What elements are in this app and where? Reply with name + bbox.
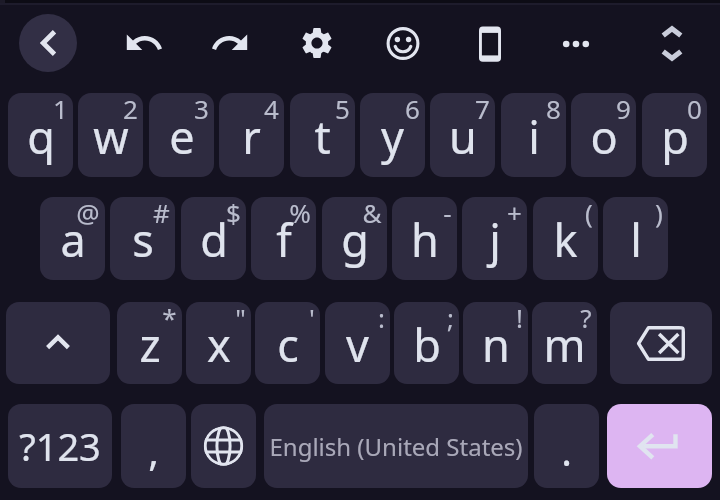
staticText: ?123 — [19, 420, 101, 472]
button[interactable]: , — [121, 404, 186, 488]
button[interactable]: Backspace — [610, 302, 712, 384]
staticText: b — [413, 314, 441, 375]
staticText: @ — [76, 197, 100, 230]
staticText: k — [553, 209, 578, 270]
staticText: x — [207, 314, 231, 375]
staticText: , — [148, 423, 159, 477]
staticText: 6 — [405, 93, 420, 126]
staticText: y — [381, 106, 404, 167]
button[interactable]: Settings — [289, 15, 345, 71]
staticText: c — [277, 314, 299, 375]
button[interactable]: Change language — [191, 404, 256, 488]
staticText: # — [153, 197, 170, 230]
staticText: l — [630, 209, 642, 270]
button[interactable]: Undo — [116, 15, 172, 71]
staticText: 8 — [546, 93, 561, 126]
button[interactable]: a — [40, 197, 105, 280]
staticText: s — [132, 209, 154, 270]
button[interactable]: e — [149, 93, 214, 177]
button[interactable]: Switch keyboard layout — [462, 15, 518, 71]
staticText: $ — [226, 197, 241, 230]
staticText: p — [661, 106, 689, 167]
staticText: d — [200, 209, 228, 270]
button[interactable]: l — [603, 197, 668, 280]
button[interactable]: b — [394, 302, 459, 384]
button[interactable]: q — [8, 93, 73, 177]
staticText: : — [378, 302, 385, 335]
staticText: q — [27, 106, 55, 167]
button[interactable]: c — [255, 302, 320, 384]
staticText: h — [411, 209, 439, 270]
button[interactable]: Resize keyboard — [644, 15, 700, 71]
button[interactable]: r — [219, 93, 284, 177]
staticText: j — [489, 209, 501, 270]
button[interactable]: Emoji — [375, 15, 431, 71]
staticText: e — [169, 106, 195, 167]
button[interactable]: z — [117, 302, 182, 384]
button[interactable]: g — [322, 197, 387, 280]
button[interactable]: ?123 — [8, 404, 112, 488]
button[interactable]: u — [430, 93, 495, 177]
staticText: g — [341, 209, 369, 270]
staticText: ? — [580, 302, 592, 335]
button[interactable]: n — [463, 302, 528, 384]
button[interactable]: f — [251, 197, 316, 280]
staticText: v — [346, 314, 369, 375]
staticText: . — [561, 423, 572, 477]
button[interactable]: . — [534, 404, 599, 488]
staticText: t — [314, 106, 331, 167]
button[interactable]: h — [392, 197, 457, 280]
staticText: " — [235, 302, 246, 335]
button[interactable]: i — [501, 93, 566, 177]
button[interactable]: p — [642, 93, 707, 177]
staticText: i — [528, 106, 540, 167]
staticText: 3 — [194, 93, 209, 126]
button[interactable]: x — [186, 302, 251, 384]
button[interactable]: v — [325, 302, 390, 384]
staticText: 0 — [687, 93, 702, 126]
staticText: a — [60, 209, 86, 270]
staticText: 4 — [264, 93, 279, 126]
button[interactable]: w — [78, 93, 143, 177]
staticText: - — [443, 197, 452, 230]
staticText: m — [543, 314, 586, 375]
staticText: 7 — [475, 93, 490, 126]
staticText: o — [590, 106, 618, 167]
button[interactable]: s — [110, 197, 175, 280]
staticText: ; — [447, 302, 454, 335]
staticText: w — [93, 106, 129, 167]
staticText: % — [289, 197, 311, 230]
button[interactable]: o — [571, 93, 636, 177]
button[interactable]: Shift — [6, 302, 110, 384]
staticText: ! — [516, 302, 523, 335]
staticText: r — [242, 106, 261, 167]
button[interactable]: English (United States) — [264, 404, 528, 488]
staticText: z — [139, 314, 161, 375]
staticText: English (United States) — [269, 430, 523, 463]
staticText: ' — [309, 302, 315, 335]
staticText: 2 — [123, 93, 138, 126]
staticText: n — [482, 314, 510, 375]
button[interactable]: k — [533, 197, 598, 280]
button[interactable]: Redo — [202, 15, 258, 71]
staticText: 1 — [53, 93, 68, 126]
button[interactable]: Enter — [607, 404, 712, 488]
button[interactable]: More options — [548, 15, 604, 71]
button[interactable]: m — [532, 302, 597, 384]
button[interactable]: j — [462, 197, 527, 280]
button[interactable]: y — [360, 93, 425, 177]
button[interactable]: t — [290, 93, 355, 177]
staticText: 5 — [335, 93, 350, 126]
button[interactable]: Back — [19, 14, 77, 72]
staticText: * — [162, 302, 177, 335]
staticText: u — [449, 106, 477, 167]
staticText: ( — [585, 197, 593, 230]
button[interactable]: d — [181, 197, 246, 280]
staticText: + — [507, 197, 522, 230]
staticText: f — [276, 209, 292, 270]
staticText: & — [362, 197, 382, 230]
staticText: 9 — [616, 93, 631, 126]
staticText: ) — [655, 197, 663, 230]
